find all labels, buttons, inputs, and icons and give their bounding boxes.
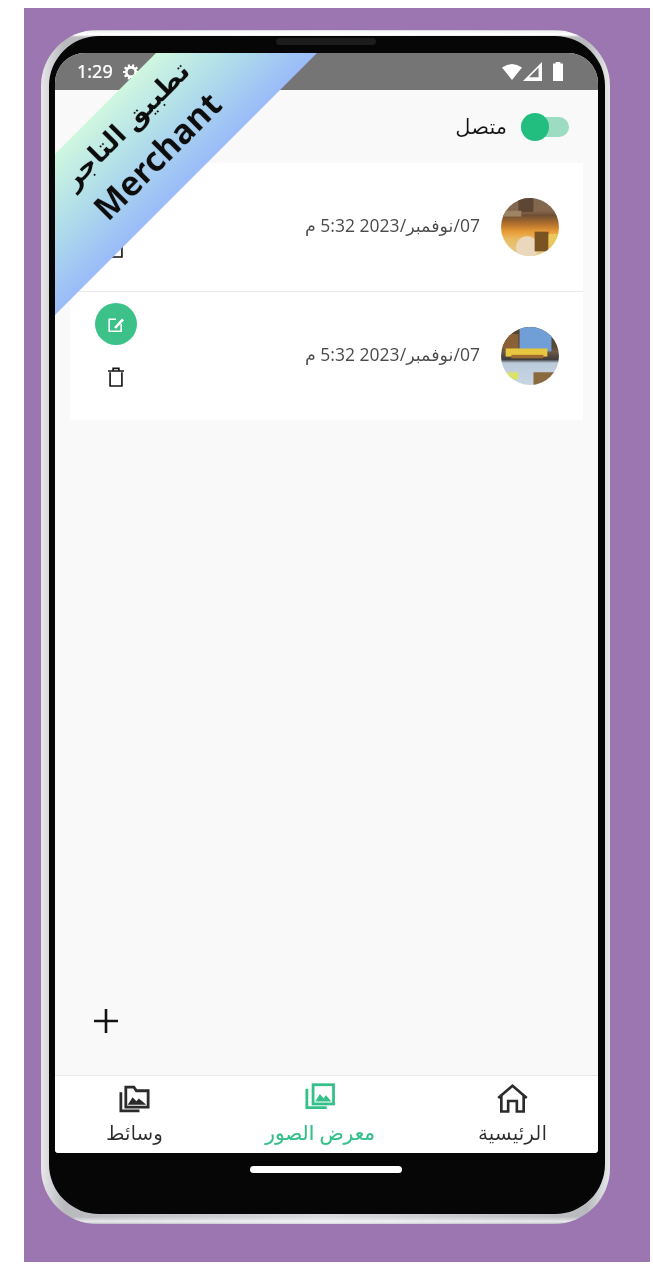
staticText: تطبيق التاجر [55,53,197,196]
staticText: 07/نوفمبر/2023 5:32 م [304,213,480,237]
button[interactable]: Add [83,998,129,1044]
staticText: متصل [455,115,507,139]
staticText: معرض الصور [265,1119,375,1146]
button[interactable]: 07/نوفمبر/2023 5:32 م [70,163,583,291]
staticText: Merchant [83,81,231,230]
button[interactable]: متصل [455,113,569,141]
staticText: 1:29 [77,59,113,84]
button[interactable]: Edit [95,303,137,345]
button[interactable]: وسائط [55,1076,224,1153]
staticText: الرئيسية [478,1121,547,1144]
button[interactable]: 07/نوفمبر/2023 5:32 م [70,292,583,420]
button[interactable]: الرئيسية [422,1076,598,1153]
staticText: 07/نوفمبر/2023 5:32 م [304,342,480,366]
staticText: وسائط [105,1121,163,1144]
button[interactable]: Delete [100,232,132,264]
button[interactable]: معرض الصور [230,1076,410,1153]
button[interactable]: Delete [100,361,132,393]
